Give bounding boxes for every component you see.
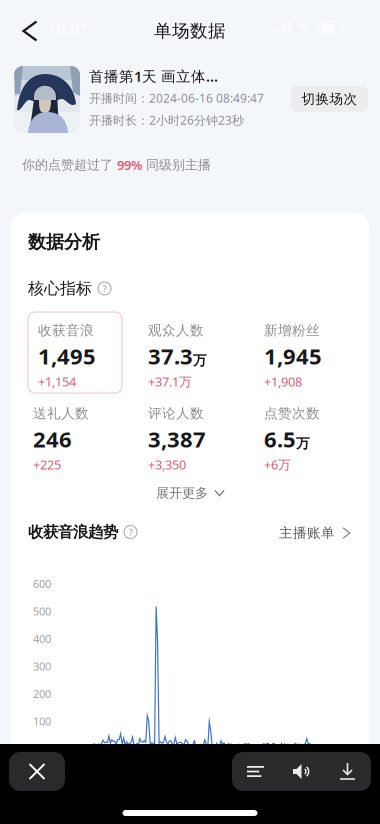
- staticText: 你的点赞超过了: [22, 157, 117, 173]
- staticText: +1,908: [264, 373, 302, 390]
- staticText: 100: [33, 714, 51, 729]
- staticText: 300: [33, 659, 51, 674]
- staticText: 1,495: [38, 341, 96, 371]
- staticText: 收获音浪趋势: [28, 522, 118, 542]
- staticText: 200: [33, 686, 51, 701]
- staticText: 首播第1天 画立体…: [89, 66, 218, 86]
- button[interactable]: Close: [9, 752, 65, 791]
- staticText: 展开更多: [156, 485, 208, 501]
- staticText: 3,387: [148, 424, 206, 454]
- staticText: 数据分析: [28, 231, 100, 253]
- staticText: 主播账单: [279, 524, 335, 541]
- staticText: +1,154: [38, 373, 76, 390]
- staticText: 送礼人数: [33, 405, 89, 422]
- staticText: 开播时长：2小时26分钟23秒: [89, 112, 244, 128]
- staticText: 6.5: [264, 424, 296, 454]
- staticText: 开播时间：2024-06-16 08:49:47: [89, 90, 264, 106]
- button[interactable]: Download: [324, 752, 370, 791]
- staticText: 观众人数: [148, 322, 204, 339]
- staticText: 评论人数: [148, 405, 204, 422]
- staticText: 400: [33, 631, 51, 646]
- staticText: ?: [102, 282, 106, 295]
- staticText: 0: [45, 741, 51, 756]
- staticText: 收获音浪: [38, 322, 94, 339]
- staticText: +3,350: [148, 456, 186, 473]
- staticText: ?: [128, 525, 132, 539]
- staticText: 500: [33, 604, 51, 619]
- staticText: +37.1万: [148, 373, 192, 390]
- button[interactable]: Back: [8, 8, 52, 54]
- staticText: 万: [296, 435, 310, 452]
- staticText: 1,945: [264, 341, 322, 371]
- button[interactable]: 展开更多: [11, 480, 369, 506]
- staticText: 同级别主播: [142, 157, 211, 173]
- staticText: 37.3: [148, 341, 193, 371]
- staticText: 99%: [117, 156, 142, 174]
- staticText: 核心指标: [28, 278, 92, 299]
- button[interactable]: 切换场次: [291, 86, 368, 112]
- staticText: 点赞次数: [264, 405, 320, 422]
- staticText: 万: [193, 352, 207, 369]
- staticText: +225: [33, 456, 61, 473]
- staticText: 单场数据: [154, 20, 226, 42]
- button[interactable]: Volume: [278, 752, 324, 791]
- staticText: 新增粉丝: [264, 322, 320, 339]
- button[interactable]: List: [232, 752, 278, 791]
- staticText: +6万: [264, 456, 291, 473]
- staticText: 600: [33, 576, 51, 591]
- staticText: 246: [33, 424, 72, 454]
- button[interactable]: 主播账单: [279, 523, 350, 543]
- staticText: 切换场次: [301, 90, 357, 107]
